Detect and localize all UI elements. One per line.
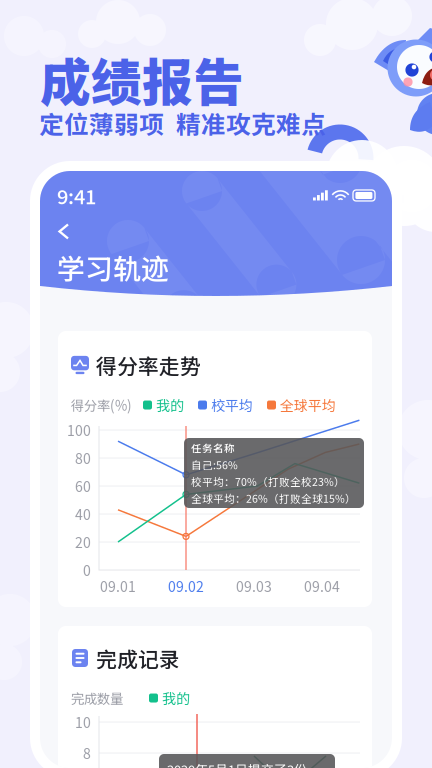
button[interactable]: Back	[40, 210, 78, 243]
staticText: 成绩报告	[40, 42, 244, 116]
staticText: 80	[75, 448, 91, 468]
staticText: 全球平均	[280, 395, 336, 415]
staticText: 60	[75, 476, 91, 496]
staticText: 学习轨迹	[57, 247, 169, 287]
staticText: 我的	[162, 688, 190, 708]
staticText: 全球平均：26%（打败全球15%）	[191, 490, 356, 506]
staticText: 100	[67, 420, 91, 440]
staticText: 40	[75, 504, 91, 524]
staticText: 我的	[156, 395, 184, 415]
staticText: 8	[83, 743, 91, 763]
staticText: 2020年5月1日提交了3份练习	[167, 760, 327, 768]
staticText: 得分率(%)	[71, 395, 132, 415]
staticText: 任务名称	[191, 440, 235, 455]
staticText: 完成数量	[71, 688, 123, 708]
staticText: 09.02	[168, 576, 204, 596]
staticText: 得分率走势	[96, 350, 201, 380]
staticText: 0	[83, 560, 91, 580]
staticText: 校平均	[211, 395, 253, 415]
staticText: 9:41	[57, 181, 96, 210]
staticText: 校平均：70%（打败全校23%）	[191, 474, 345, 489]
staticText: 09.01	[100, 576, 136, 596]
staticText: 自己:56%	[191, 457, 238, 472]
staticText: 20	[75, 532, 91, 552]
staticText: 定位薄弱项 精准攻克难点	[39, 105, 326, 141]
staticText: 09.03	[236, 576, 272, 596]
staticText: 完成记录	[96, 643, 180, 673]
staticText: 10	[75, 712, 91, 732]
staticText: 09.04	[304, 576, 340, 596]
